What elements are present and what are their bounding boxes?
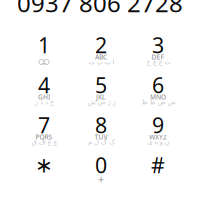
button[interactable]: 0 [72,151,129,191]
staticText: 6 [152,71,164,99]
staticText: GHI [38,93,50,101]
button[interactable]: 8 [72,111,129,151]
staticText: PQRS [35,133,52,141]
button[interactable]: 1 [15,31,72,71]
staticText: 1 [38,31,50,59]
staticText: ∗ [35,153,53,177]
staticText: WXYZ [149,133,167,141]
button[interactable]: 6 [129,71,186,111]
staticText: خ د ذ ر [34,98,53,106]
staticText: 9 [152,111,164,139]
staticText: ع غ ف ق [31,138,57,146]
button[interactable]: ∗ [15,151,72,191]
button[interactable]: 3 [129,31,186,71]
staticText: ص ض ط ظ [141,98,175,106]
staticText: MNO [150,93,166,101]
staticText: 4 [38,71,50,99]
staticText: 3 [152,31,164,59]
staticText: 0937 806 2728 [17,0,183,19]
button[interactable]: # [129,151,186,191]
staticText: ز ژ س ش [87,98,115,106]
button[interactable]: 2 [72,31,129,71]
button[interactable]: 9 [129,111,186,151]
staticText: 8 [95,111,107,139]
staticText: 7 [38,111,50,139]
staticText: 5 [95,71,107,99]
button[interactable]: 7 [15,111,72,151]
staticText: ث ج چ ح [146,58,170,66]
staticText: 2 [95,31,107,59]
staticText: 0 [95,151,107,179]
staticText: ک گ ل م [87,138,114,146]
staticText: ن و ه ی [147,138,169,146]
button[interactable]: 4 [15,71,72,111]
staticText: ABC [95,53,107,61]
staticText: JKL [96,93,106,101]
staticText: ا ب پ ت [88,58,114,66]
staticText: DEF [151,53,164,61]
staticText: + [98,172,104,186]
staticText: # [151,151,165,179]
staticText: TUV [94,133,107,141]
button[interactable]: 5 [72,71,129,111]
